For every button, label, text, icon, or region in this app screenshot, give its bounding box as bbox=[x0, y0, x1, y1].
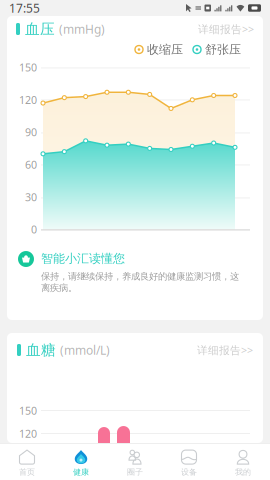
staticText: 首页 bbox=[19, 467, 35, 477]
staticText: 90 bbox=[25, 125, 37, 139]
button[interactable]: 我的 bbox=[216, 441, 270, 480]
staticText: 17:55 bbox=[9, 0, 40, 16]
staticText: (mmol/L) bbox=[60, 342, 110, 358]
staticText: 详细报告>> bbox=[197, 343, 253, 357]
button[interactable]: 圈子 bbox=[108, 441, 162, 480]
staticText: 健康 bbox=[73, 467, 89, 477]
staticText: 收缩压 bbox=[147, 42, 183, 57]
staticText: 血压 bbox=[25, 20, 55, 38]
staticText: 智能小汇读懂您 bbox=[41, 251, 125, 266]
staticText: (mmHg) bbox=[59, 21, 105, 37]
button[interactable]: 详细报告>> bbox=[197, 343, 253, 357]
button[interactable]: 健康 bbox=[54, 441, 108, 480]
staticText: 150 bbox=[19, 403, 37, 418]
staticText: 120 bbox=[19, 426, 37, 441]
staticText: 血糖 bbox=[26, 341, 56, 359]
staticText: 我的 bbox=[235, 467, 251, 477]
button[interactable]: 详细报告>> bbox=[198, 22, 254, 36]
button[interactable]: 设备 bbox=[162, 441, 216, 480]
staticText: 舒张压 bbox=[205, 42, 241, 57]
staticText: 0 bbox=[31, 222, 37, 236]
staticText: 30 bbox=[25, 190, 37, 204]
staticText: 60 bbox=[25, 157, 37, 172]
staticText: 120 bbox=[19, 93, 37, 107]
staticText: 保持，请继续保持，养成良好的健康监测习惯，这离疾病。 bbox=[41, 271, 239, 294]
staticText: 详细报告>> bbox=[198, 22, 254, 36]
staticText: 圈子 bbox=[127, 467, 143, 477]
button[interactable]: 首页 bbox=[0, 441, 54, 480]
staticText: 设备 bbox=[181, 467, 197, 477]
staticText: 150 bbox=[19, 60, 37, 74]
